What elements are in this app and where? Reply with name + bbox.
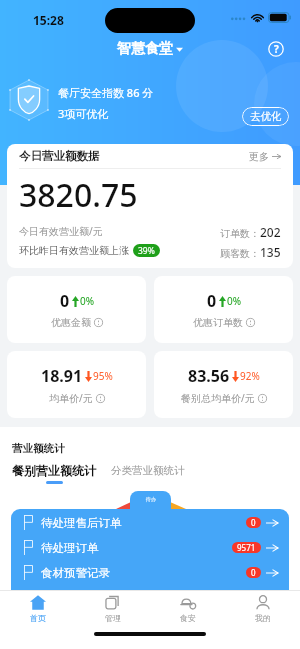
staticText: 83.56 (188, 365, 230, 387)
staticText: 0 (251, 567, 256, 578)
staticText: 3820.75 (19, 173, 138, 217)
button[interactable]: 待处理订单 (24, 535, 278, 560)
staticText: 智慧食堂 (117, 40, 173, 58)
staticText: 首页 (30, 613, 46, 623)
button[interactable]: 83.56 (154, 351, 293, 418)
staticText: 优惠金额 (51, 316, 91, 329)
button[interactable]: 管理 (75, 591, 150, 625)
staticText: 去优化 (250, 110, 282, 123)
staticText: 更多 (249, 150, 269, 163)
staticText: 0 (251, 517, 256, 528)
button[interactable]: 食材预警记录 (24, 560, 278, 585)
staticText: 3项可优化 (58, 106, 109, 121)
staticText: 待处理售后订单 (41, 516, 122, 530)
staticText: 0 (60, 290, 70, 312)
staticText: 今日有效营业额/元 (19, 224, 103, 238)
staticText: 0% (80, 294, 95, 308)
staticText: 顾客数： (220, 247, 260, 260)
staticText: 管理 (105, 613, 121, 623)
staticText: 食安 (180, 613, 196, 623)
button[interactable]: 0 (154, 276, 293, 343)
button[interactable]: 我的 (225, 591, 300, 625)
button[interactable]: 更多 (249, 150, 281, 163)
staticText: 均单价/元 (49, 391, 93, 405)
staticText: 餐厅安全指数 86 分 (58, 85, 154, 100)
staticText: 优惠订单数 (193, 316, 243, 329)
button[interactable]: 今日营业额数据 (7, 144, 293, 268)
staticText: 环比昨日有效营业额上涨 (19, 244, 129, 257)
button[interactable]: 0 (7, 276, 146, 343)
staticText: 95% (93, 369, 113, 383)
staticText: 202 (260, 224, 281, 240)
button[interactable]: 智慧食堂 (117, 40, 183, 58)
staticText: 待处理订单 (41, 541, 99, 555)
button[interactable]: 首页 (0, 591, 75, 625)
button[interactable]: 分类营业额统计 (111, 463, 185, 476)
staticText: 订单数： (220, 227, 260, 240)
staticText: 92% (240, 369, 260, 383)
staticText: 0 (207, 290, 217, 312)
staticText: 食材预警记录 (41, 566, 110, 580)
button[interactable]: 待办 (130, 491, 171, 510)
staticText: 135 (260, 244, 281, 260)
button[interactable]: 食安 (150, 591, 225, 625)
staticText: 18.91 (41, 365, 83, 387)
staticText: 39% (138, 245, 155, 257)
button[interactable]: 18.91 (7, 351, 146, 418)
button[interactable]: Help (268, 41, 284, 57)
staticText: 我的 (255, 613, 271, 623)
staticText: 9571 (237, 542, 256, 553)
staticText: ? (274, 42, 279, 56)
staticText: 今日营业额数据 (19, 149, 100, 163)
button[interactable]: 餐别营业额统计 (12, 463, 96, 478)
staticText: 营业额统计 (12, 442, 65, 455)
staticText: 餐别总均单价/元 (181, 391, 255, 405)
staticText: 15:28 (33, 12, 64, 28)
staticText: 待办 (146, 496, 156, 502)
button[interactable]: 去优化 (242, 107, 289, 126)
staticText: 0% (227, 294, 242, 308)
button[interactable]: 待处理售后订单 (24, 510, 278, 535)
